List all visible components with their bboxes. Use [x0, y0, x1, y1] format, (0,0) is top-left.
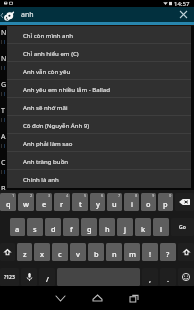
button[interactable]: e — [36, 193, 52, 211]
button[interactable]: f — [63, 218, 79, 236]
button[interactable]: Backspace — [175, 193, 194, 211]
staticText: l — [160, 224, 162, 234]
staticText: v — [76, 249, 80, 259]
button[interactable]: s — [27, 218, 43, 236]
button[interactable]: Back — [47, 286, 73, 310]
button[interactable]: d — [45, 218, 61, 236]
staticText: l — [4, 65, 6, 72]
staticText: x — [40, 249, 45, 259]
button[interactable]: Chỉ anh hiểu em (C) — [7, 44, 191, 62]
staticText: anh — [21, 10, 34, 20]
staticText: k — [141, 224, 146, 234]
button[interactable]: u — [107, 193, 122, 211]
staticText: t — [79, 199, 82, 209]
button[interactable]: k — [135, 218, 151, 236]
button[interactable]: o — [141, 193, 156, 211]
button[interactable]: Emoji — [178, 268, 194, 286]
staticText: / — [46, 274, 49, 284]
button[interactable]: a — [10, 218, 25, 236]
button[interactable]: Anh tràng buồn — [7, 152, 191, 170]
button[interactable]: c — [52, 243, 68, 261]
button[interactable]: Shift — [0, 243, 15, 261]
staticText: C — [1, 158, 6, 168]
button[interactable]: b — [88, 243, 104, 261]
button[interactable]: , — [142, 268, 158, 286]
staticText: 6 — [101, 193, 104, 198]
button[interactable]: Anh vẫn còn yêu — [7, 62, 191, 80]
button[interactable]: Go — [171, 218, 194, 236]
button[interactable]: r — [54, 193, 70, 211]
staticText: . — [167, 274, 170, 284]
staticText: l — [1, 91, 3, 98]
staticText: l — [1, 143, 3, 150]
button[interactable]: v — [70, 243, 86, 261]
button[interactable]: h — [99, 218, 115, 236]
staticText: Chỉ anh hiểu em (C) — [23, 49, 79, 57]
staticText: B — [1, 184, 6, 194]
staticText: 3 — [48, 193, 51, 198]
staticText: ! — [149, 249, 152, 259]
staticText: N — [1, 54, 7, 64]
staticText: f — [70, 224, 73, 234]
button[interactable]: j — [117, 218, 133, 236]
button[interactable]: p — [158, 193, 173, 211]
staticText: o — [146, 199, 151, 209]
staticText: 7 — [118, 193, 121, 198]
staticText: h — [105, 224, 110, 234]
button[interactable]: w — [18, 193, 34, 211]
button[interactable]: g — [81, 218, 97, 236]
button[interactable]: Chỉ còn mình anh — [7, 26, 191, 44]
staticText: e — [42, 199, 47, 209]
staticText: 2 — [30, 193, 33, 198]
button[interactable]: ? — [160, 243, 176, 261]
button[interactable]: Navigate up — [0, 7, 21, 22]
button[interactable]: Shift — [178, 243, 194, 261]
staticText: Anh tràng buồn — [23, 157, 69, 165]
button[interactable]: Anh yêu em nhiều lắm - Ballad — [7, 80, 191, 98]
staticText: Anh vẫn còn yêu — [23, 67, 71, 75]
staticText: , — [149, 274, 152, 284]
button[interactable]: Recent apps — [121, 286, 147, 310]
button[interactable]: Home — [84, 286, 110, 310]
staticText: q — [6, 199, 11, 209]
button[interactable]: t — [72, 193, 88, 211]
button[interactable]: Clear search — [172, 7, 194, 22]
staticText: Cô đơn (Nguyễn Ánh 9) — [23, 121, 90, 129]
button[interactable]: q — [0, 193, 16, 211]
staticText: 1 — [12, 193, 15, 198]
button[interactable]: y — [90, 193, 105, 211]
button[interactable]: i — [124, 193, 139, 211]
button[interactable]: Voice input — [21, 268, 37, 286]
staticText: c — [58, 249, 62, 259]
button[interactable]: . — [160, 268, 176, 286]
button[interactable]: x — [34, 243, 50, 261]
button[interactable]: ?123 — [0, 268, 19, 286]
staticText: A — [1, 132, 6, 142]
button[interactable]: Anh sẽ nhớ mãi — [7, 98, 191, 116]
staticText: l — [1, 39, 3, 46]
button[interactable]: / — [39, 268, 55, 286]
staticText: l — [1, 65, 3, 72]
button[interactable]: l — [153, 218, 169, 236]
staticText: Chính là anh — [23, 175, 59, 183]
staticText: Go — [179, 224, 186, 231]
staticText: l — [4, 91, 6, 98]
staticText: m — [129, 249, 136, 259]
staticText: 14:57 — [174, 0, 190, 7]
staticText: w — [23, 199, 29, 209]
button[interactable]: ! — [142, 243, 158, 261]
button[interactable]: Anh phải làm sao — [7, 134, 191, 152]
button[interactable]: m — [124, 243, 140, 261]
staticText: 0 — [169, 193, 172, 198]
staticText: 9 — [152, 193, 155, 198]
staticText: Chỉ còn mình anh — [23, 31, 74, 39]
button[interactable]: Chính là anh — [7, 170, 191, 188]
staticText: s — [33, 224, 37, 234]
staticText: ? — [166, 249, 170, 259]
button[interactable]: Cô đơn (Nguyễn Ánh 9) — [7, 116, 191, 134]
button[interactable]: n — [106, 243, 122, 261]
button[interactable]: z — [17, 243, 32, 261]
